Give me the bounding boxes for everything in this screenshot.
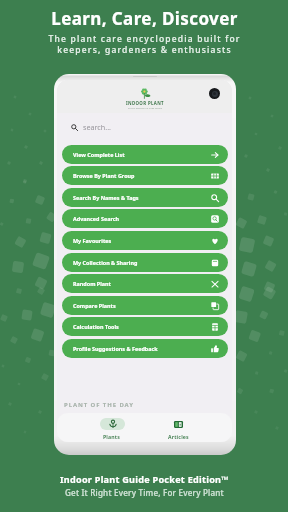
button[interactable]: Browse By Plant Group: [62, 166, 228, 185]
button[interactable]: Search By Names & Tags: [62, 188, 228, 207]
staticText: search...: [83, 122, 112, 132]
staticText: Advanced Search: [73, 215, 120, 222]
button[interactable]: Plants: [79, 415, 145, 440]
staticText: PLANT IDENTIFY & CARE GUIDE: [128, 107, 162, 110]
staticText: Profile Suggestions & Feedback: [73, 345, 158, 352]
button[interactable]: Calculation Tools: [62, 317, 228, 336]
staticText: The plant care encyclopedia built for ke…: [48, 33, 241, 55]
button[interactable]: Articles: [145, 415, 211, 440]
staticText: View Complete List: [73, 151, 125, 158]
staticText: PLANT OF THE DAY: [64, 401, 134, 409]
staticText: Calculation Tools: [73, 323, 119, 330]
button[interactable]: Random Plant: [62, 274, 228, 293]
button[interactable]: Profile Suggestions & Feedback: [62, 339, 228, 358]
button[interactable]: View Complete List: [62, 145, 228, 164]
staticText: Browse By Plant Group: [73, 172, 135, 179]
button[interactable]: Compare Plants: [62, 296, 228, 315]
staticText: INDOOR PLANT: [126, 100, 164, 106]
staticText: My Favourites: [73, 237, 112, 244]
staticText: Plants: [103, 433, 121, 440]
staticText: My Collection & Sharing: [73, 259, 138, 266]
staticText: Random Plant: [73, 280, 111, 287]
staticText: Learn, Care, Discover: [51, 7, 238, 30]
staticText: Indoor Plant Guide Pocket Edition™: [60, 473, 229, 485]
staticText: Get It Right Every Time, For Every Plant: [65, 487, 224, 498]
staticText: Compare Plants: [73, 302, 116, 309]
staticText: Search By Names & Tags: [73, 194, 139, 201]
button[interactable]: Advanced Search: [62, 209, 228, 228]
button[interactable]: My Collection & Sharing: [62, 253, 228, 272]
button[interactable]: search...: [71, 122, 112, 132]
staticText: Articles: [168, 433, 189, 440]
button[interactable]: My Favourites: [62, 231, 228, 250]
